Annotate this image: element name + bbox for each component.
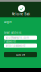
staticText: LOG IN [16, 53, 25, 56]
staticText: Email address [4, 31, 21, 34]
staticText: you@example.com [5, 36, 28, 39]
staticText: Login [4, 20, 12, 24]
staticText: Welcome Back [11, 12, 29, 16]
staticText: Enter password [5, 44, 25, 47]
staticText: Password [4, 40, 16, 43]
button[interactable]: LOG IN [4, 52, 37, 57]
